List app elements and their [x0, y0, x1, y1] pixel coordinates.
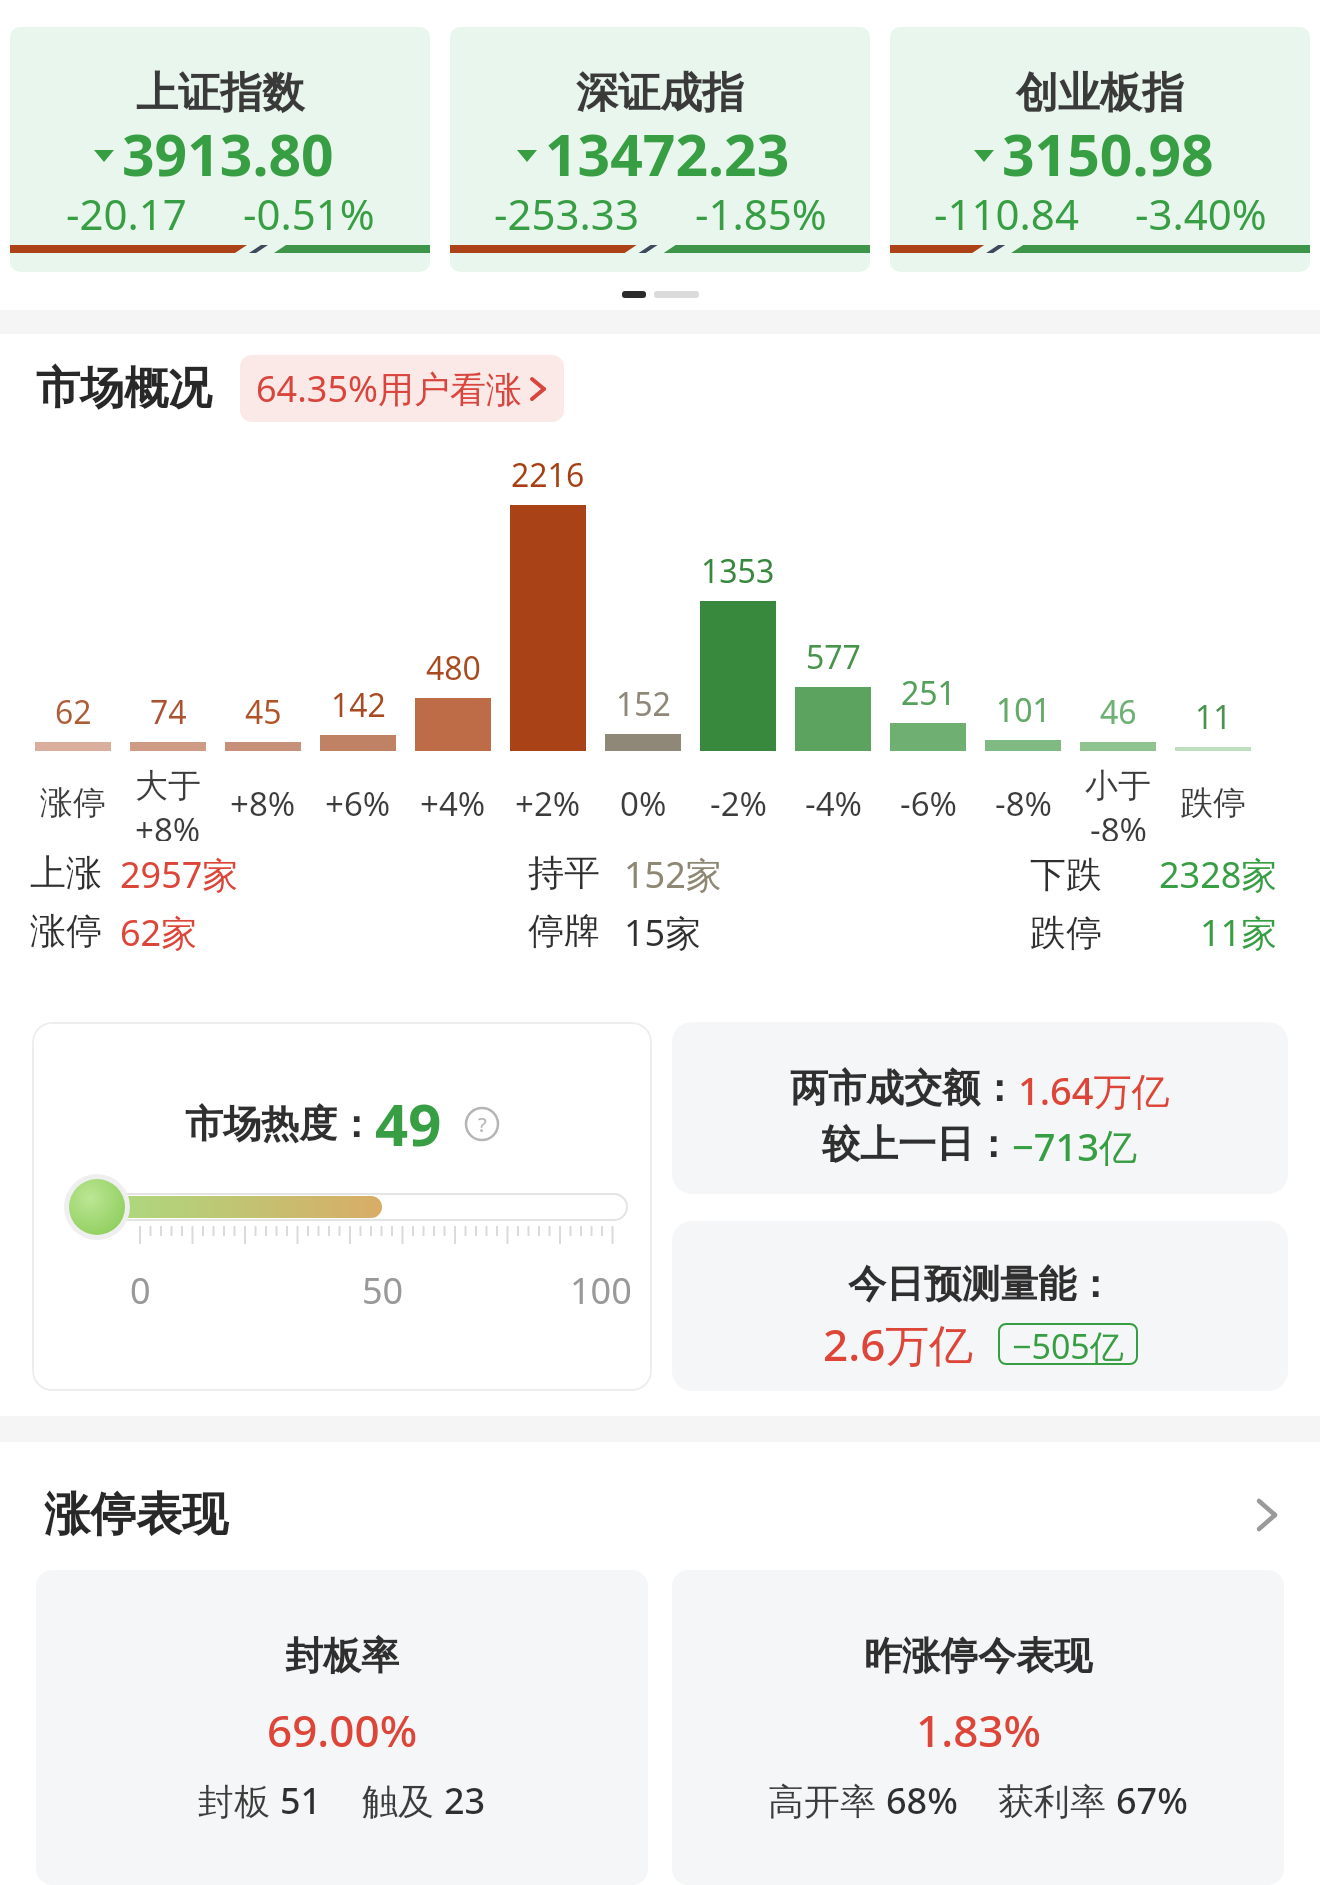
- staticText: 市场热度：: [185, 1100, 375, 1148]
- staticText: +2%: [515, 781, 581, 826]
- staticText: 577: [806, 635, 861, 679]
- staticText: 涨停: [40, 782, 106, 824]
- staticText: 封板率: [285, 1632, 399, 1680]
- button[interactable]: 两市成交额：: [672, 1022, 1288, 1194]
- staticText: 跌停: [1030, 910, 1102, 955]
- staticText: 大于: [135, 765, 201, 807]
- button[interactable]: 封板率: [36, 1570, 648, 1885]
- staticText: 0%: [620, 781, 667, 826]
- staticText: 市场概况: [36, 361, 212, 416]
- staticText: 较上一日：: [822, 1120, 1012, 1168]
- button[interactable]: 64.35%用户看涨: [240, 355, 564, 422]
- staticText: 3913.80: [122, 115, 334, 193]
- staticText: 62: [55, 690, 92, 734]
- staticText: -20.17: [66, 185, 187, 242]
- staticText: 深证成指: [576, 67, 744, 120]
- staticText: −713亿: [1012, 1120, 1138, 1172]
- staticText: 1353: [701, 549, 775, 593]
- staticText: 11家: [1200, 908, 1278, 957]
- staticText: 3150.98: [1002, 115, 1214, 193]
- staticText: 1.64万亿: [1018, 1064, 1170, 1116]
- staticText: 持平: [528, 850, 600, 895]
- staticText: +8%: [230, 781, 296, 826]
- staticText: 创业板指: [1016, 67, 1184, 120]
- staticText: 45: [245, 690, 282, 734]
- staticText: 昨涨停今表现: [864, 1632, 1092, 1680]
- staticText: 100: [570, 1266, 632, 1315]
- staticText: 跌停: [1180, 782, 1246, 824]
- staticText: 1.83%: [916, 1700, 1041, 1760]
- button[interactable]: 深证成指: [450, 27, 870, 272]
- staticText: 涨停表现: [44, 1486, 228, 1544]
- staticText: 68%: [886, 1776, 958, 1825]
- button[interactable]: 市场热度：: [32, 1022, 652, 1391]
- staticText: -110.84: [934, 185, 1079, 242]
- staticText: -3.40%: [1135, 185, 1267, 242]
- staticText: 两市成交额：: [790, 1064, 1018, 1112]
- staticText: 获利率: [998, 1776, 1116, 1825]
- staticText: -1.85%: [695, 185, 827, 242]
- staticText: 49: [375, 1084, 442, 1163]
- button[interactable]: 上证指数: [10, 27, 430, 272]
- staticText: 0: [130, 1266, 151, 1315]
- button[interactable]: 涨停表现: [44, 1486, 1280, 1544]
- staticText: 46: [1100, 690, 1137, 734]
- staticText: 上涨: [30, 850, 102, 895]
- staticText: −505亿: [1012, 1323, 1124, 1365]
- staticText: 高开率: [768, 1776, 886, 1825]
- staticText: 下跌: [1030, 852, 1102, 897]
- staticText: +8%: [135, 807, 201, 841]
- staticText: 小于: [1085, 765, 1151, 807]
- staticText: 2.6万亿: [823, 1314, 974, 1374]
- staticText: 74: [150, 690, 187, 734]
- staticText: -4%: [805, 781, 862, 826]
- staticText: -8%: [995, 781, 1052, 826]
- staticText: 触及: [362, 1776, 444, 1825]
- staticText: 152: [616, 682, 671, 726]
- staticText: +4%: [420, 781, 486, 826]
- staticText: 142: [331, 683, 386, 727]
- staticText: 62家: [120, 908, 198, 957]
- staticText: +6%: [325, 781, 391, 826]
- staticText: 2328家: [1159, 850, 1278, 899]
- staticText: 封板: [198, 1776, 280, 1825]
- staticText: -0.51%: [243, 185, 375, 242]
- staticText: 2957家: [120, 850, 239, 899]
- staticText: 251: [901, 671, 956, 715]
- staticText: 上证指数: [136, 67, 304, 120]
- staticText: 停牌: [528, 908, 600, 953]
- staticText: 480: [426, 646, 481, 690]
- staticText: 2216: [511, 453, 585, 497]
- staticText: 15家: [624, 908, 702, 957]
- staticText: 67%: [1116, 1776, 1188, 1825]
- staticText: -2%: [710, 781, 767, 826]
- staticText: 51: [280, 1776, 322, 1825]
- staticText: -6%: [900, 781, 957, 826]
- button[interactable]: 昨涨停今表现: [672, 1570, 1284, 1885]
- staticText: -8%: [1090, 807, 1147, 841]
- button[interactable]: 创业板指: [890, 27, 1310, 272]
- staticText: 64.35%用户看涨: [256, 364, 522, 413]
- staticText: 50: [362, 1266, 404, 1315]
- staticText: -253.33: [494, 185, 639, 242]
- staticText: 69.00%: [267, 1700, 418, 1760]
- staticText: 今日预测量能：: [848, 1260, 1114, 1308]
- staticText: 152家: [624, 850, 722, 899]
- staticText: 23: [444, 1776, 486, 1825]
- staticText: ?: [478, 1111, 487, 1138]
- staticText: 涨停: [30, 908, 102, 953]
- staticText: 13472.23: [545, 115, 790, 193]
- button[interactable]: 今日预测量能：: [672, 1221, 1288, 1391]
- staticText: 11: [1195, 695, 1232, 739]
- staticText: 101: [996, 688, 1051, 732]
